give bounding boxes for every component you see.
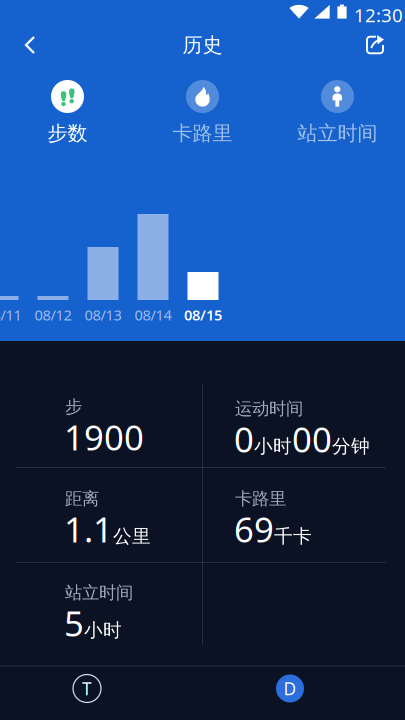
button[interactable]: 返回 <box>8 24 52 66</box>
staticText: 千卡 <box>274 525 312 548</box>
staticText: 12:30 <box>354 3 403 27</box>
staticText: 距离 <box>65 488 99 509</box>
button[interactable]: 站立时间 <box>270 80 405 146</box>
staticText: 历史 <box>182 33 222 57</box>
button[interactable]: 文字 <box>62 663 112 713</box>
staticText: 08/15 <box>184 305 222 324</box>
staticText: 00 <box>292 416 332 462</box>
staticText: 08/14 <box>134 305 171 324</box>
button[interactable]: 分享 <box>353 24 397 66</box>
staticText: 公里 <box>113 525 151 548</box>
staticText: 运动时间 <box>235 398 303 419</box>
staticText: 08/11 <box>0 305 21 324</box>
staticText: 步 <box>65 396 82 417</box>
staticText: T <box>82 677 92 700</box>
staticText: 小时 <box>254 435 292 458</box>
staticText: 站立时间 <box>297 121 377 146</box>
staticText: 08/13 <box>84 305 121 324</box>
button[interactable]: 卡路里 <box>135 80 270 146</box>
staticText: 08/12 <box>34 305 71 324</box>
staticText: 0 <box>234 416 254 462</box>
staticText: 1900 <box>64 414 144 460</box>
staticText: 小时 <box>84 619 122 642</box>
button[interactable]: 步数 <box>0 80 135 146</box>
staticText: 1.1 <box>64 506 113 552</box>
staticText: 5 <box>64 600 84 646</box>
staticText: 站立时间 <box>65 582 133 603</box>
button[interactable]: 设备 <box>265 663 315 713</box>
staticText: 卡路里 <box>172 121 232 146</box>
staticText: D <box>283 677 296 700</box>
staticText: 步数 <box>47 121 87 146</box>
staticText: 69 <box>234 506 274 552</box>
staticText: 分钟 <box>332 435 370 458</box>
staticText: 卡路里 <box>235 488 286 509</box>
